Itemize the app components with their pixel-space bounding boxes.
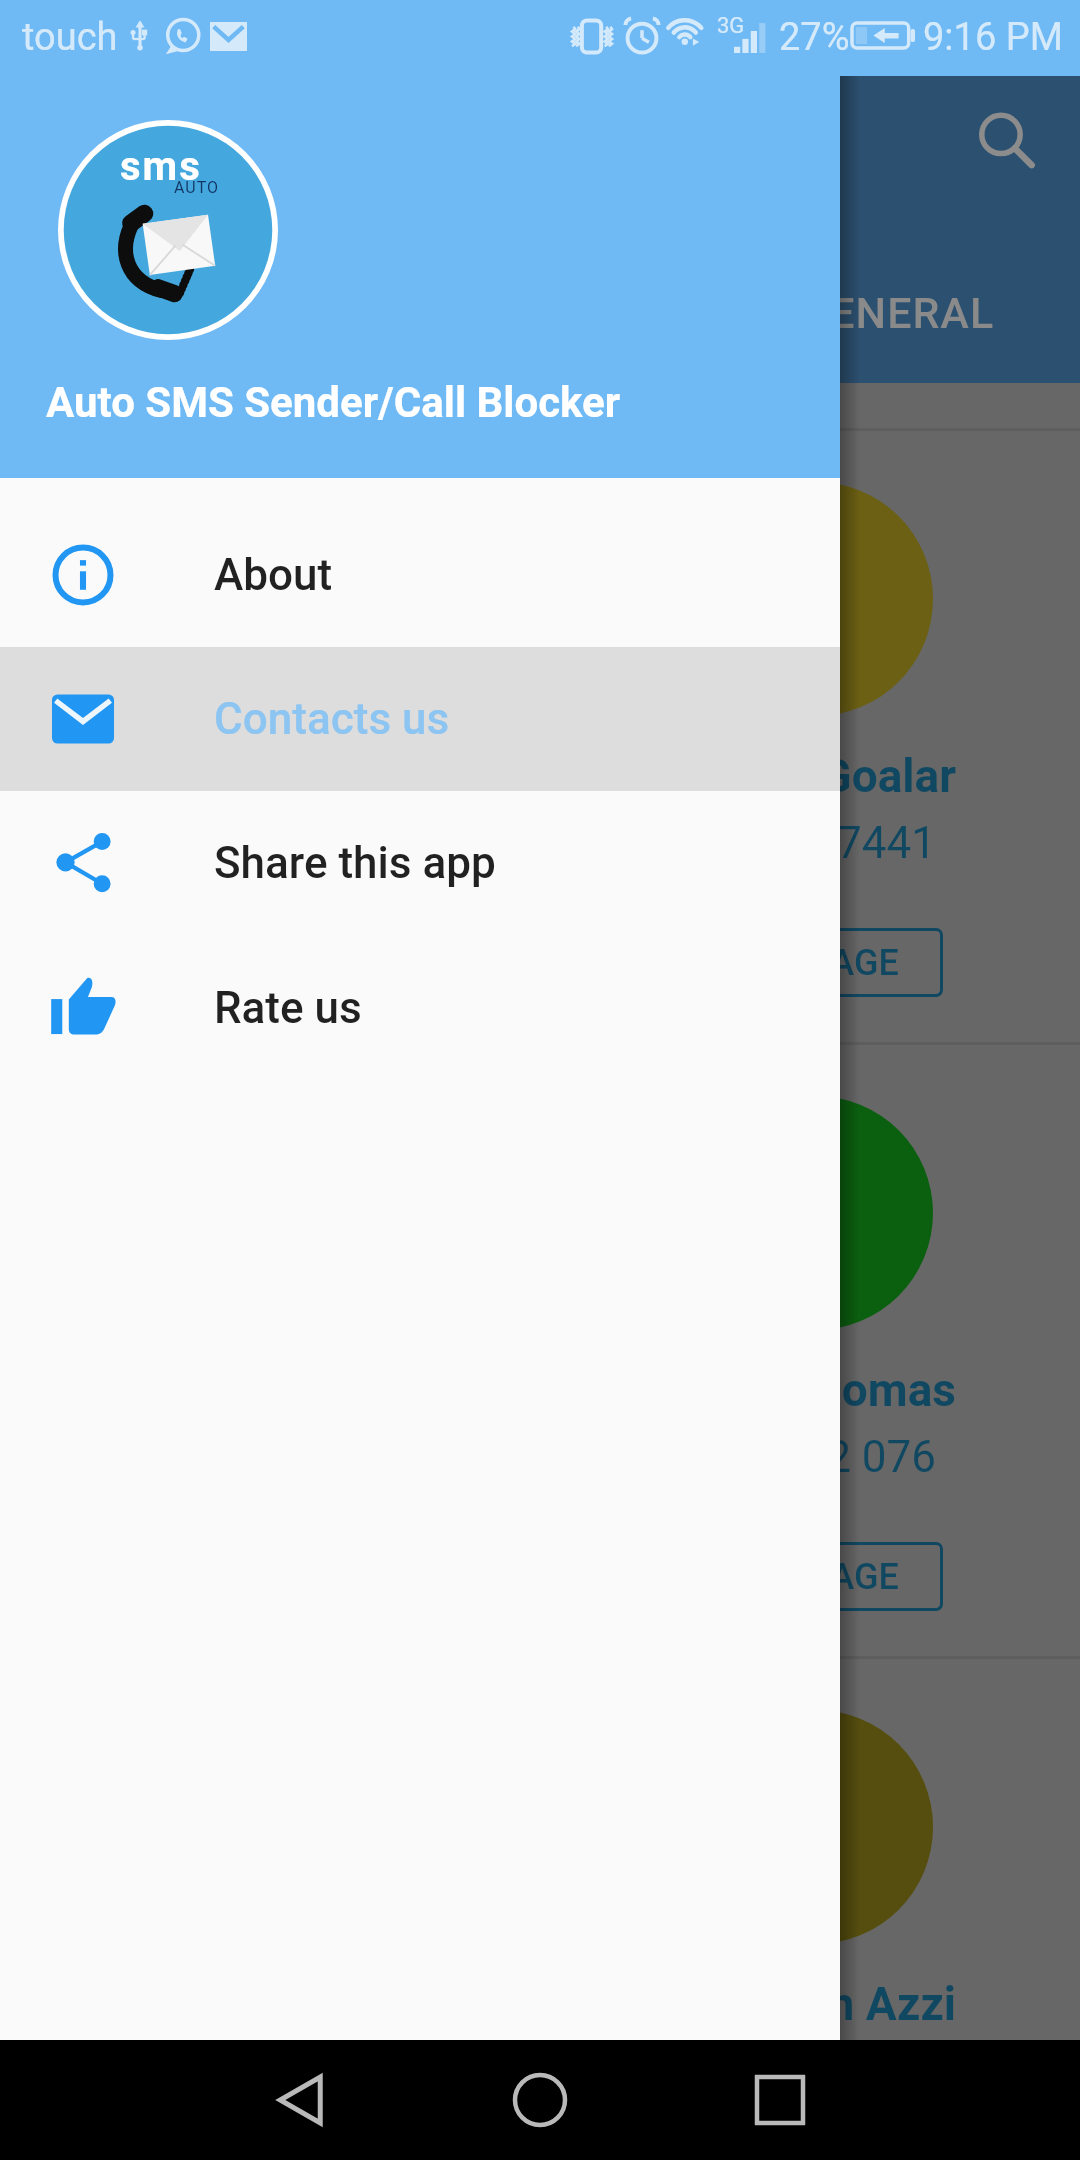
staticText: Auto SMS Sender/Call Blocker [46,378,621,427]
staticText: touch [22,15,118,60]
button[interactable]: Thomas [0,1045,1080,1659]
button[interactable]: Share this app [0,791,840,934]
staticText: About [214,549,333,601]
staticText: Share this app [214,837,496,889]
button[interactable]: Roshan Azzi [0,1659,1080,2160]
button[interactable]: Ibrahim Goalar [0,431,1080,1045]
staticText: MESSAGE [735,942,899,984]
staticText: Roshan Azzi [699,1977,956,2031]
button[interactable]: Rate us [0,934,840,1081]
button[interactable]: Home [480,2040,600,2160]
staticText: 27% [779,15,850,60]
button[interactable]: About [0,503,840,647]
staticText: Rate us [214,982,362,1034]
staticText: GENERAL [800,288,995,338]
button[interactable]: Recents [720,2040,840,2160]
button[interactable]: MESSAGE [690,1542,943,1611]
staticText: 9:16 PM [923,15,1063,60]
staticText: 3G [717,13,745,39]
staticText: +880 1700 362 076 [556,1431,936,1483]
staticText: +880 1703 317441 [567,817,936,869]
staticText: AUTO [174,178,220,197]
staticText: +880 1612 900 311 [556,2045,936,2097]
button[interactable]: MESSAGE [690,928,943,997]
button[interactable]: Search [952,96,1048,192]
button[interactable]: Back [240,2040,360,2160]
staticText: sms [120,143,202,190]
staticText: Contacts us [214,693,450,745]
staticText: MESSAGE [735,1556,899,1598]
button[interactable]: Contacts us [0,647,840,791]
staticText: Ibrahim Goalar [650,749,956,803]
staticText: Thomas [787,1363,956,1417]
